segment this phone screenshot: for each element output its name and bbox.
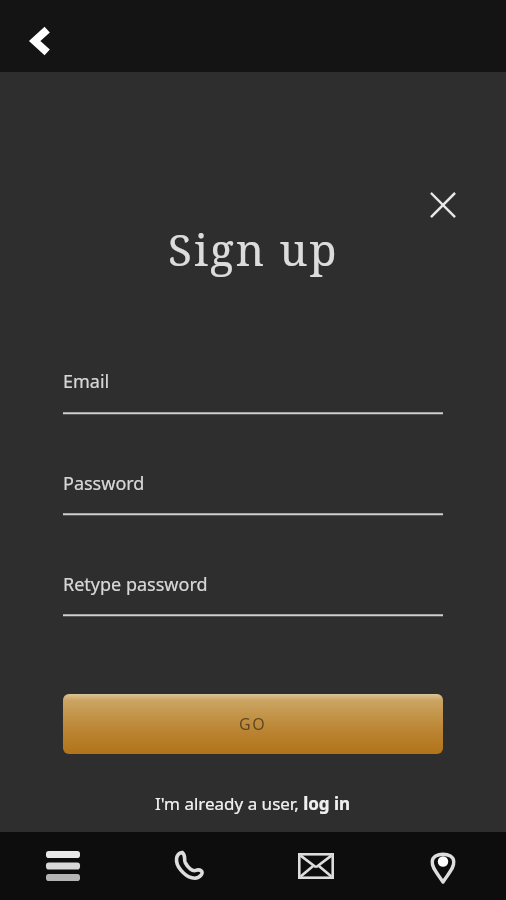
button[interactable]: Email xyxy=(252,832,379,900)
staticText: Email xyxy=(63,369,110,394)
staticText: Retype password xyxy=(63,572,208,597)
button[interactable]: Password xyxy=(63,471,443,523)
button[interactable]: Retype password xyxy=(63,572,443,624)
button[interactable]: I'm already a user, log in xyxy=(147,790,359,817)
button[interactable]: Close xyxy=(419,181,467,229)
button[interactable]: Menu xyxy=(0,832,126,900)
button[interactable]: Email xyxy=(63,369,443,422)
button[interactable]: GO xyxy=(63,694,443,754)
button[interactable]: Back xyxy=(18,17,66,65)
staticText: I'm already a user, log in xyxy=(155,792,351,815)
button[interactable]: Location xyxy=(379,832,506,900)
staticText: Sign up xyxy=(168,219,339,279)
staticText: GO xyxy=(239,713,267,735)
button[interactable]: Call xyxy=(126,832,252,900)
staticText: Password xyxy=(63,471,145,496)
